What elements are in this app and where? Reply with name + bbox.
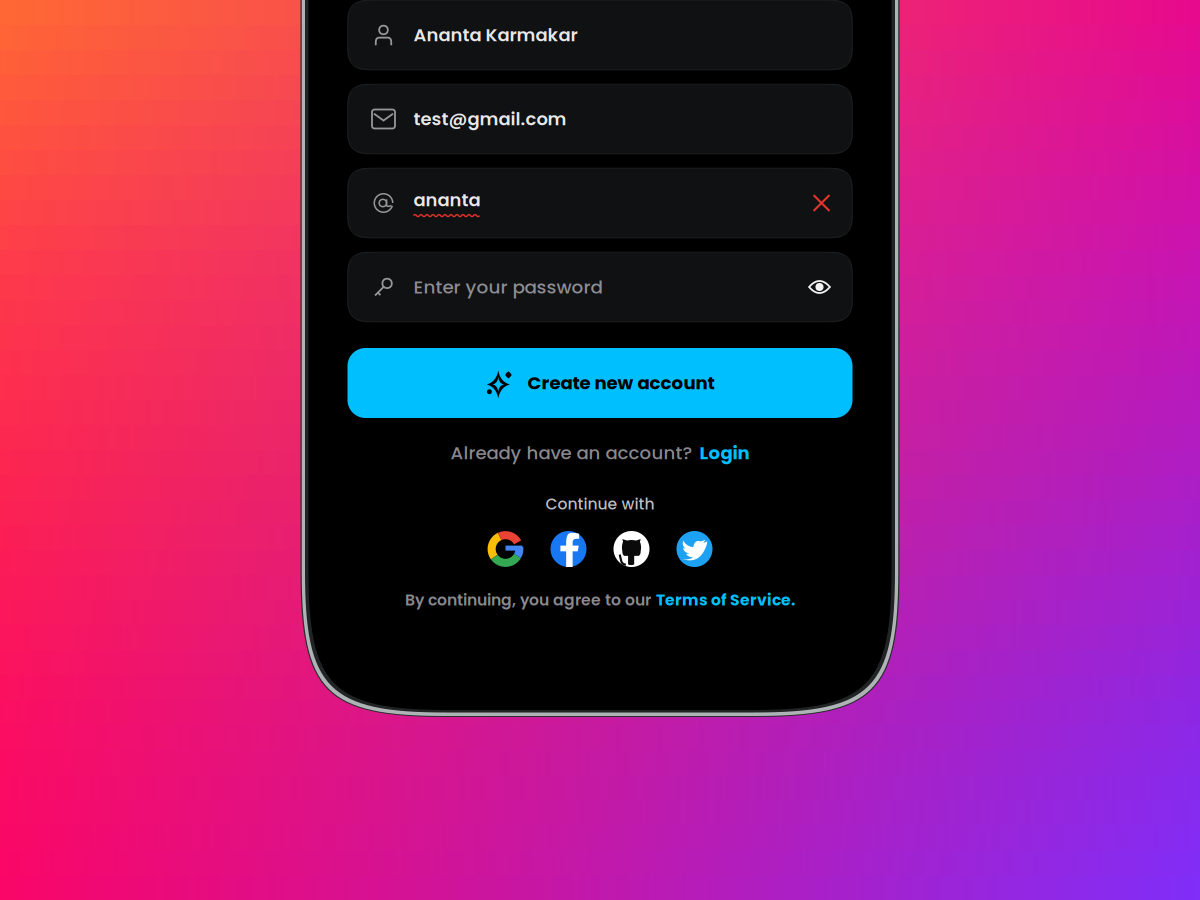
staticText: Login <box>699 440 749 466</box>
staticText: Continue with <box>545 493 654 515</box>
button[interactable]: Create new account <box>347 348 852 418</box>
staticText: ananta <box>413 187 480 213</box>
staticText: Terms of Service. <box>656 589 795 611</box>
staticText: Already have an account? <box>450 440 692 466</box>
staticText: By continuing, you agree to our <box>405 589 651 611</box>
button[interactable]: Login <box>699 440 749 466</box>
button[interactable]: Terms of Service. <box>656 589 795 611</box>
button[interactable]: Continue with Facebook <box>550 531 586 567</box>
button[interactable]: ananta <box>347 168 852 238</box>
button[interactable]: Enter your password <box>347 252 852 322</box>
button[interactable]: Continue with GitHub <box>613 531 649 567</box>
staticText: Ananta Karmakar <box>413 22 577 48</box>
button[interactable]: Continue with Google <box>487 531 523 567</box>
button[interactable]: Continue with Twitter <box>676 531 712 567</box>
button[interactable]: test@gmail.com <box>347 84 852 154</box>
button[interactable]: Ananta Karmakar <box>347 0 852 70</box>
staticText: test@gmail.com <box>413 106 566 132</box>
staticText: Enter your password <box>413 274 602 300</box>
staticText: Create new account <box>527 370 714 396</box>
